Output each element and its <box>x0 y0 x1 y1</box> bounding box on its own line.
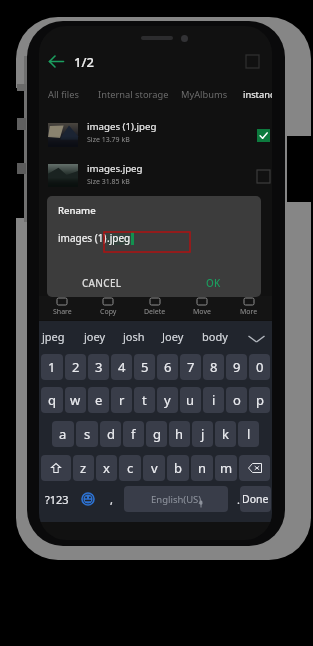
staticText: English(US) <box>151 493 202 506</box>
button[interactable]: jpeg <box>39 323 70 350</box>
button[interactable]: Move <box>178 296 225 317</box>
button[interactable]: images (1).jpeg <box>39 115 272 157</box>
button[interactable]: Backspace <box>239 455 270 481</box>
staticText: d <box>107 425 115 443</box>
button[interactable]: w <box>65 387 86 413</box>
button[interactable]: 1 <box>41 354 63 380</box>
button[interactable]: Joey <box>157 323 189 350</box>
button[interactable]: u <box>180 387 201 413</box>
staticText: q <box>48 391 56 409</box>
button[interactable]: Not selected <box>257 170 270 183</box>
staticText: images (1) <box>58 231 107 245</box>
staticText: 9 <box>233 358 241 376</box>
button[interactable]: Done <box>240 486 271 512</box>
button[interactable]: Share <box>39 296 85 317</box>
button[interactable]: Emoji <box>75 486 100 512</box>
button[interactable]: q <box>41 387 63 413</box>
button[interactable]: 4 <box>111 354 132 380</box>
button[interactable]: t <box>134 387 155 413</box>
staticText: Share <box>53 307 72 317</box>
button[interactable]: f <box>123 421 144 447</box>
button[interactable]: j <box>192 421 213 447</box>
button[interactable]: , <box>101 486 122 512</box>
staticText: r <box>119 391 125 409</box>
button[interactable]: m <box>215 455 237 481</box>
button[interactable]: Internal storage <box>92 84 175 104</box>
staticText: Delete <box>144 307 166 317</box>
staticText: Internal storage <box>98 88 169 100</box>
button[interactable]: MyAlbums <box>175 84 234 104</box>
button[interactable]: English(US) <box>124 486 228 512</box>
button[interactable]: k <box>215 421 236 447</box>
staticText: ?123 <box>45 492 69 507</box>
button[interactable]: h <box>169 421 190 447</box>
button[interactable]: 8 <box>203 354 224 380</box>
button[interactable]: v <box>143 455 165 481</box>
button[interactable]: 3 <box>88 354 109 380</box>
button[interactable]: o <box>226 387 247 413</box>
staticText: a <box>59 425 67 443</box>
button[interactable]: p <box>249 387 270 413</box>
staticText: images (1).jpeg <box>87 120 157 133</box>
button[interactable]: Expand suggestions <box>246 328 266 348</box>
button[interactable]: OK <box>200 273 227 292</box>
button[interactable]: g <box>146 421 167 447</box>
button[interactable]: Select all <box>246 55 259 68</box>
staticText: , <box>110 492 113 507</box>
staticText: h <box>175 425 184 443</box>
button[interactable]: e <box>88 387 109 413</box>
button[interactable]: Delete <box>131 296 178 317</box>
staticText: y <box>164 391 171 409</box>
button[interactable]: b <box>167 455 189 481</box>
button[interactable]: joey <box>79 323 111 350</box>
button[interactable]: 7 <box>180 354 201 380</box>
button[interactable]: a <box>52 421 74 447</box>
button[interactable]: x <box>96 455 117 481</box>
staticText: images.jpeg <box>87 162 143 175</box>
button[interactable]: y <box>157 387 178 413</box>
button[interactable]: l <box>238 421 259 447</box>
staticText: f <box>131 425 136 443</box>
staticText: OK <box>206 276 221 289</box>
staticText: MyAlbums <box>181 88 228 100</box>
staticText: w <box>70 391 81 409</box>
button[interactable]: . <box>231 486 245 512</box>
staticText: j <box>201 425 205 443</box>
button[interactable]: ?123 <box>41 486 73 512</box>
button[interactable]: All files <box>42 84 85 104</box>
button[interactable]: Shift <box>41 455 71 481</box>
button[interactable]: z <box>73 455 94 481</box>
button[interactable]: c <box>119 455 141 481</box>
staticText: .jpeg <box>107 231 131 245</box>
button[interactable]: 2 <box>65 354 86 380</box>
button[interactable]: More <box>225 296 272 317</box>
button[interactable]: CANCEL <box>76 273 128 292</box>
button[interactable]: Back <box>48 54 65 69</box>
button[interactable]: s <box>76 421 98 447</box>
button[interactable]: Selected <box>257 129 270 142</box>
button[interactable]: d <box>100 421 121 447</box>
button[interactable]: instanc <box>237 84 272 104</box>
button[interactable]: 6 <box>157 354 178 380</box>
staticText: Size 13.79 kB <box>87 135 130 145</box>
staticText: v <box>151 459 158 477</box>
button[interactable]: n <box>191 455 213 481</box>
button[interactable]: images.jpeg <box>39 156 272 198</box>
button[interactable]: r <box>111 387 132 413</box>
button[interactable]: body <box>197 323 233 350</box>
button[interactable]: 9 <box>226 354 247 380</box>
staticText: Copy <box>100 307 117 317</box>
staticText: o <box>233 391 241 409</box>
staticText: e <box>95 391 103 409</box>
staticText: instanc <box>243 88 272 100</box>
staticText: x <box>103 459 110 477</box>
button[interactable]: Copy <box>85 296 131 317</box>
button[interactable]: i <box>203 387 224 413</box>
staticText: t <box>142 391 147 409</box>
button[interactable]: 5 <box>134 354 155 380</box>
button[interactable]: josh <box>118 323 150 350</box>
staticText: CANCEL <box>82 276 122 289</box>
staticText: Done <box>242 492 269 506</box>
staticText: 8 <box>210 358 218 376</box>
button[interactable]: 0 <box>249 354 270 380</box>
